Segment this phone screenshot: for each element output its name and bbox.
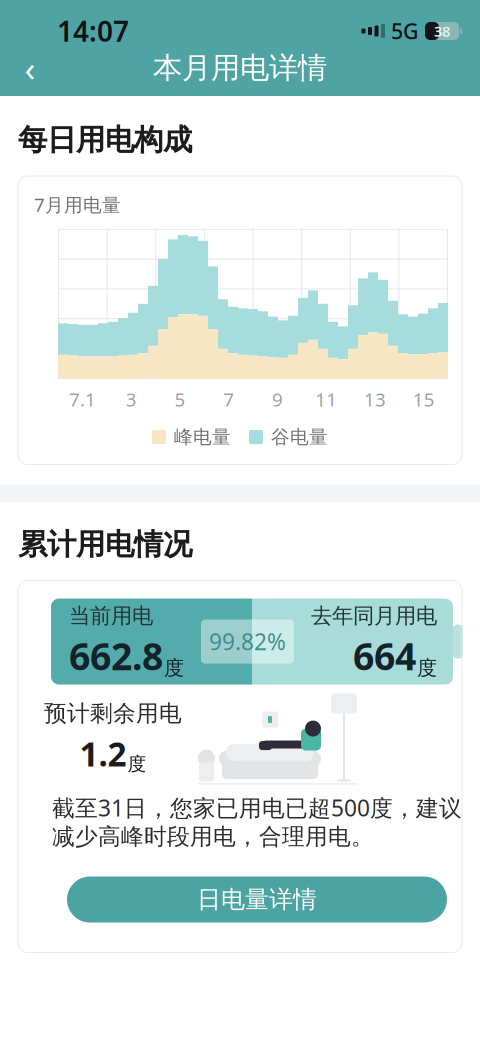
staticText: 每日用电构成 bbox=[18, 122, 192, 158]
staticText: 15 bbox=[413, 387, 435, 412]
staticText: 38 bbox=[434, 21, 450, 41]
staticText: 度 bbox=[127, 753, 146, 776]
staticText: 7月用电量 bbox=[34, 192, 121, 217]
staticText: 当前用电 bbox=[69, 603, 153, 629]
staticText: 5G bbox=[391, 17, 419, 45]
staticText: 662.8 bbox=[69, 631, 163, 680]
button[interactable]: 日电量详情 bbox=[67, 876, 447, 922]
staticText: 谷电量 bbox=[271, 426, 328, 448]
staticText: 日电量详情 bbox=[197, 885, 317, 914]
staticText: 累计用电情况 bbox=[18, 526, 192, 562]
staticText: 去年同月用电 bbox=[311, 603, 437, 629]
staticText: 峰电量 bbox=[174, 426, 231, 448]
staticText: 9 bbox=[272, 387, 283, 412]
staticText: 7.1 bbox=[69, 387, 96, 412]
staticText: 截至31日，您家已用电已超500度，建议减少高峰时段用电，合理用电。 bbox=[52, 793, 462, 850]
staticText: 度 bbox=[417, 656, 437, 680]
staticText: 99.82% bbox=[209, 626, 286, 657]
staticText: 14:07 bbox=[57, 12, 129, 50]
staticText: 13 bbox=[364, 387, 386, 412]
staticText: 预计剩余用电 bbox=[44, 699, 182, 727]
staticText: 本月用电详情 bbox=[153, 50, 327, 86]
staticText: 1.2 bbox=[79, 731, 126, 776]
staticText: 664 bbox=[353, 631, 416, 680]
staticText: 3 bbox=[126, 387, 137, 412]
staticText: 11 bbox=[315, 387, 337, 412]
button[interactable]: Back bbox=[8, 48, 52, 88]
staticText: ‹ bbox=[24, 45, 35, 91]
staticText: 5 bbox=[174, 387, 185, 412]
staticText: 度 bbox=[164, 656, 184, 680]
staticText: 7 bbox=[223, 387, 234, 412]
